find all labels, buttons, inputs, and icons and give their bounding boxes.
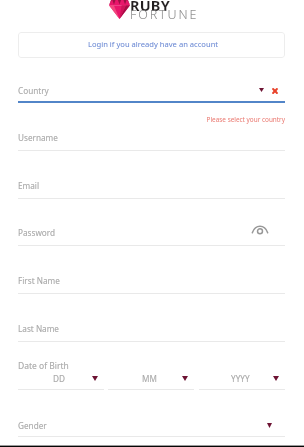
staticText: Gender bbox=[18, 420, 47, 431]
button[interactable]: Clear country bbox=[272, 88, 278, 94]
button[interactable]: Country bbox=[18, 79, 285, 103]
button[interactable]: Username bbox=[18, 126, 285, 151]
button[interactable]: Password bbox=[18, 221, 285, 246]
button[interactable]: Login if you already have an account bbox=[18, 32, 285, 58]
staticText: MM bbox=[142, 373, 157, 383]
staticText: YYYY bbox=[231, 373, 250, 383]
button[interactable]: Select gender bbox=[18, 414, 285, 437]
staticText: Username bbox=[18, 132, 58, 143]
button[interactable]: MM bbox=[108, 372, 194, 390]
button[interactable]: First Name bbox=[18, 269, 285, 294]
staticText: Login if you already have an account bbox=[88, 39, 219, 49]
staticText: DD bbox=[53, 373, 65, 383]
button[interactable]: Show password bbox=[252, 224, 268, 234]
staticText: Please select your country bbox=[18, 115, 285, 124]
staticText: FORTUNE bbox=[130, 6, 199, 23]
staticText: Country bbox=[18, 85, 49, 96]
staticText: Email bbox=[18, 180, 40, 191]
staticText: RUBY bbox=[130, 0, 170, 15]
staticText: Date of Birth bbox=[18, 360, 69, 372]
button[interactable]: Open country list bbox=[259, 88, 264, 92]
staticText: First Name bbox=[18, 275, 60, 286]
button[interactable]: Last Name bbox=[18, 317, 285, 342]
staticText: Password bbox=[18, 227, 56, 238]
button[interactable]: Email bbox=[18, 174, 285, 199]
button[interactable]: DD bbox=[18, 372, 104, 390]
button[interactable]: YYYY bbox=[199, 372, 285, 390]
staticText: Last Name bbox=[18, 323, 59, 334]
